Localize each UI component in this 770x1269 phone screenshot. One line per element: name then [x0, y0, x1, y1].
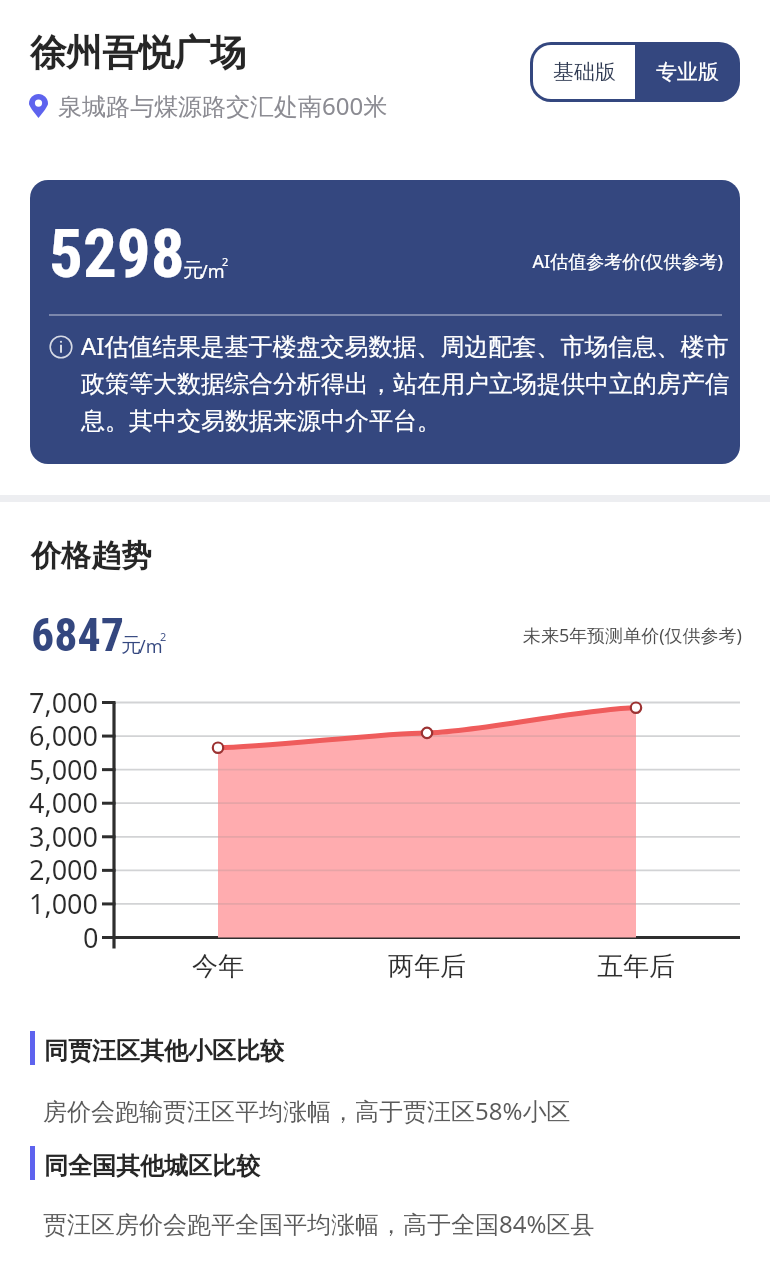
staticText: 同贾汪区其他小区比较 — [44, 1036, 284, 1066]
staticText: 4,000 — [29, 784, 99, 821]
staticText: 0 — [83, 919, 99, 956]
staticText: /m — [201, 259, 225, 284]
staticText: 房价会跑输贾汪区平均涨幅，高于贾汪区58%小区 — [43, 1094, 571, 1127]
button[interactable]: 基础版 — [533, 45, 635, 99]
staticText: 未来5年预测单价(仅供参考) — [380, 623, 742, 648]
staticText: 今年 — [192, 950, 244, 983]
staticText: 基础版 — [553, 59, 616, 85]
staticText: 泉城路与煤源路交汇处南600米 — [58, 89, 388, 122]
staticText: 徐州吾悦广场 — [30, 30, 246, 75]
staticText: 6,000 — [29, 717, 99, 754]
staticText: 2 — [222, 254, 229, 269]
button[interactable]: 专业版 — [635, 42, 740, 102]
staticText: 专业版 — [656, 59, 719, 85]
staticText: AI估值结果是基于楼盘交易数据、周边配套、市场信息、楼市政策等大数据综合分析得出… — [81, 329, 729, 436]
staticText: 五年后 — [597, 950, 675, 983]
button[interactable]: 关于AI估值说明 — [49, 335, 73, 359]
staticText: 1,000 — [29, 885, 99, 922]
staticText: 元 — [183, 258, 203, 283]
staticText: 贾汪区房价会跑平全国平均涨幅，高于全国84%区县 — [43, 1207, 595, 1240]
staticText: /m — [139, 634, 163, 659]
staticText: 7,000 — [29, 684, 99, 721]
staticText: 5,000 — [29, 751, 99, 788]
staticText: 5298 — [49, 215, 185, 294]
staticText: 2,000 — [29, 851, 99, 888]
staticText: 两年后 — [388, 950, 466, 983]
staticText: AI估值参考价(仅供参考) — [350, 249, 723, 274]
staticText: 同全国其他城区比较 — [44, 1151, 260, 1181]
staticText: 元 — [121, 633, 141, 658]
staticText: 价格趋势 — [31, 537, 151, 575]
button[interactable]: 泉城路与煤源路交汇处南600米 — [29, 89, 388, 122]
staticText: 2 — [160, 629, 167, 644]
staticText: 3,000 — [29, 818, 99, 855]
staticText: 6847 — [31, 608, 125, 662]
